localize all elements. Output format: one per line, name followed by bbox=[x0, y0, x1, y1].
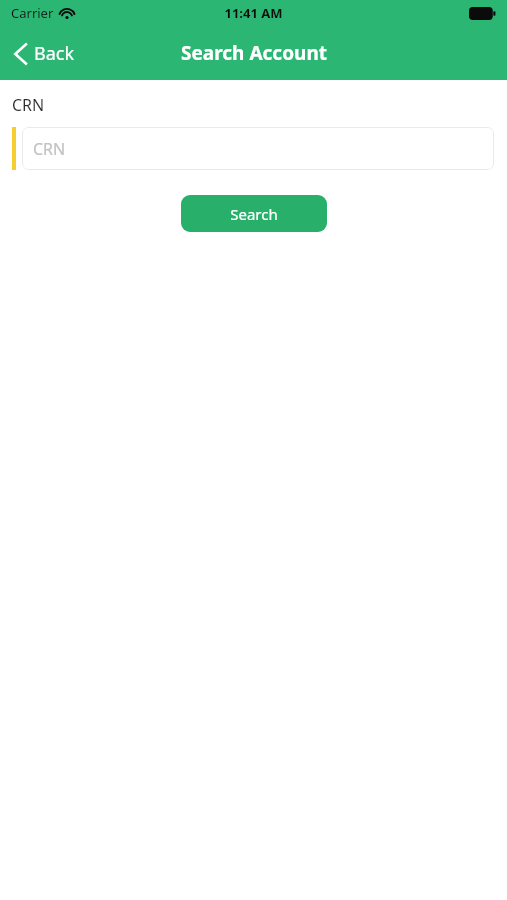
staticText: Search Account bbox=[181, 40, 327, 66]
other: Battery full bbox=[469, 7, 496, 20]
other: Wi-Fi signal bbox=[59, 7, 75, 19]
staticText: Back bbox=[34, 41, 75, 66]
staticText: Carrier bbox=[11, 4, 54, 22]
button[interactable]: Back bbox=[0, 35, 87, 72]
button[interactable]: Search bbox=[181, 195, 327, 232]
staticText: CRN bbox=[33, 138, 66, 160]
staticText: 11:41 AM bbox=[224, 4, 283, 22]
button[interactable]: CRN bbox=[22, 127, 494, 170]
staticText: CRN bbox=[12, 94, 45, 116]
staticText: Search bbox=[230, 204, 278, 224]
